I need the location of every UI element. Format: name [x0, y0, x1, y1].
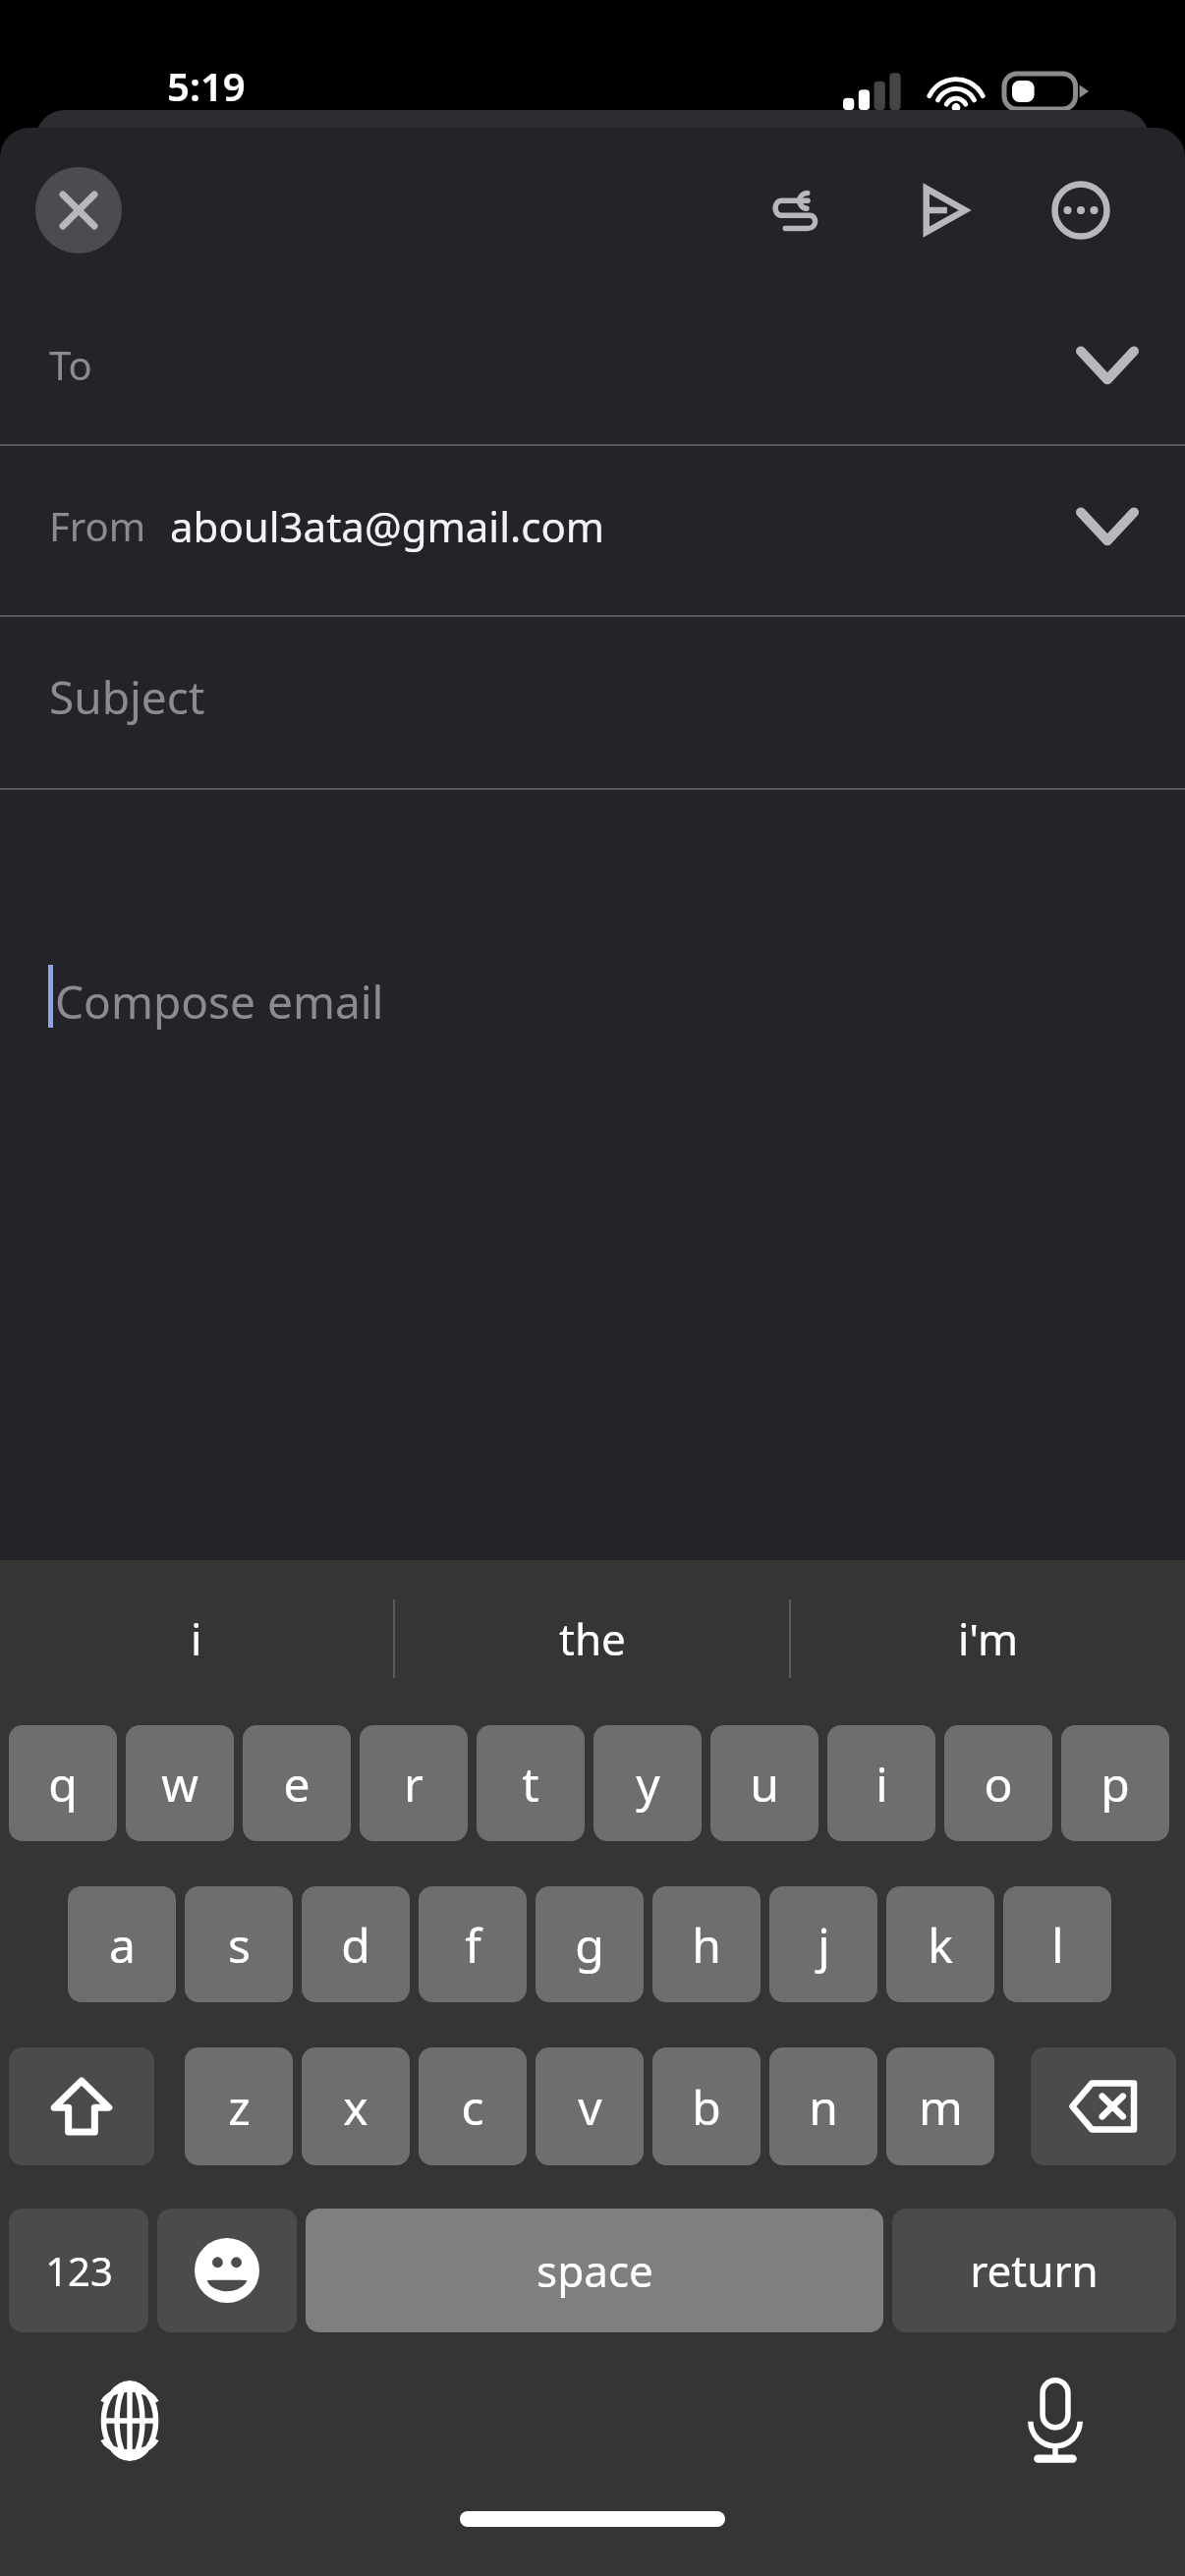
button[interactable]: From	[0, 446, 1185, 605]
staticText: j	[818, 1913, 830, 1977]
button[interactable]: v	[536, 2047, 644, 2165]
button[interactable]: i	[0, 1560, 393, 1717]
button[interactable]: z	[185, 2047, 293, 2165]
button[interactable]: Subject	[0, 617, 1185, 776]
staticText: From	[49, 499, 146, 552]
staticText: m	[919, 2075, 963, 2139]
button[interactable]: More options	[1036, 165, 1126, 255]
button[interactable]: Emoji keyboard	[157, 2209, 297, 2332]
staticText: Subject	[49, 666, 205, 728]
button[interactable]: r	[360, 1725, 468, 1841]
button[interactable]: space	[306, 2209, 883, 2332]
button[interactable]: To	[0, 285, 1185, 444]
staticText: To	[49, 338, 92, 391]
staticText: i	[875, 1752, 888, 1816]
staticText: u	[750, 1752, 779, 1816]
button[interactable]: Backspace	[1031, 2047, 1176, 2165]
staticText: x	[343, 2075, 368, 2139]
button[interactable]: k	[886, 1886, 994, 2002]
button[interactable]: Attach file	[749, 165, 839, 255]
staticText: c	[461, 2075, 484, 2139]
staticText: z	[228, 2075, 251, 2139]
staticText: l	[1051, 1913, 1064, 1977]
button[interactable]: t	[477, 1725, 585, 1841]
button[interactable]: h	[652, 1886, 761, 2002]
button[interactable]: Dictation	[1000, 2366, 1110, 2476]
button[interactable]: a	[68, 1886, 176, 2002]
button[interactable]: p	[1061, 1725, 1169, 1841]
button[interactable]: Close	[35, 167, 122, 253]
staticText: g	[575, 1913, 604, 1977]
staticText: space	[536, 2241, 653, 2300]
staticText: p	[1100, 1752, 1130, 1816]
button[interactable]: s	[185, 1886, 293, 2002]
button[interactable]: the	[395, 1560, 789, 1717]
staticText: v	[578, 2075, 602, 2139]
button[interactable]: m	[886, 2047, 994, 2165]
staticText: n	[809, 2075, 838, 2139]
button[interactable]: u	[710, 1725, 818, 1841]
staticText: aboul3ata@gmail.com	[170, 498, 605, 554]
staticText: k	[928, 1913, 953, 1977]
button[interactable]: f	[419, 1886, 527, 2002]
button[interactable]: c	[419, 2047, 527, 2165]
button[interactable]: 123	[9, 2209, 148, 2332]
button[interactable]: return	[892, 2209, 1176, 2332]
button[interactable]: Compose email	[0, 790, 1185, 1560]
staticText: 123	[45, 2244, 113, 2297]
button[interactable]: y	[593, 1725, 702, 1841]
button[interactable]: w	[126, 1725, 234, 1841]
staticText: o	[984, 1752, 1013, 1816]
staticText: r	[404, 1752, 423, 1816]
button[interactable]: Switch keyboard language	[75, 2366, 185, 2476]
staticText: t	[522, 1752, 539, 1816]
button[interactable]: g	[536, 1886, 644, 2002]
button[interactable]: x	[302, 2047, 410, 2165]
staticText: s	[228, 1913, 251, 1977]
button[interactable]: Send	[898, 165, 988, 255]
staticText: e	[283, 1752, 310, 1816]
button[interactable]: l	[1003, 1886, 1111, 2002]
button[interactable]: o	[944, 1725, 1052, 1841]
staticText: return	[970, 2241, 1099, 2300]
button[interactable]: e	[243, 1725, 351, 1841]
staticText: d	[341, 1913, 370, 1977]
staticText: y	[636, 1752, 660, 1816]
staticText: b	[692, 2075, 721, 2139]
staticText: 5:19	[167, 59, 246, 112]
staticText: Compose email	[55, 971, 384, 1033]
button[interactable]: i	[827, 1725, 935, 1841]
staticText: a	[109, 1913, 136, 1977]
button[interactable]: n	[769, 2047, 877, 2165]
button[interactable]: Shift	[9, 2047, 154, 2165]
staticText: i'm	[958, 1609, 1019, 1668]
staticText: i	[191, 1609, 202, 1668]
staticText: f	[465, 1913, 481, 1977]
button[interactable]: q	[9, 1725, 117, 1841]
staticText: h	[692, 1913, 721, 1977]
button[interactable]: d	[302, 1886, 410, 2002]
button[interactable]: j	[769, 1886, 877, 2002]
staticText: q	[48, 1752, 78, 1816]
staticText: the	[559, 1609, 626, 1668]
button[interactable]: b	[652, 2047, 761, 2165]
staticText: w	[161, 1752, 198, 1816]
button[interactable]: i'm	[791, 1560, 1185, 1717]
